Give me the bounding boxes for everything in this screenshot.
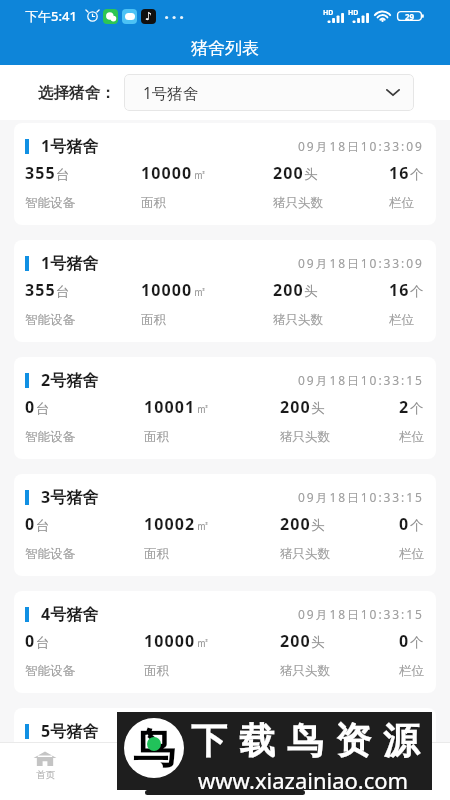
staticText: 1号猪舍	[41, 252, 99, 274]
staticText: ㎡	[196, 400, 210, 417]
staticText: 头	[311, 751, 325, 768]
staticText: www.xiazainiao.com	[198, 765, 409, 795]
staticText: HD	[348, 8, 359, 18]
staticText: 栏位	[389, 312, 414, 328]
staticText: 智能设备	[25, 429, 75, 445]
staticText: ㎡	[193, 283, 207, 300]
staticText: 选择猪舍：	[38, 83, 116, 103]
staticText: 智能设备	[25, 663, 75, 679]
staticText: 2号猪舍	[41, 369, 99, 391]
staticText: 个	[410, 517, 424, 534]
staticText: 台	[36, 751, 50, 768]
staticText: 面积	[141, 195, 166, 211]
staticText: 鸟	[133, 723, 175, 776]
staticText: 200	[280, 630, 311, 652]
staticText: 1号猪舍	[41, 135, 99, 157]
staticText: 个	[410, 283, 424, 300]
staticText: 头	[311, 634, 325, 651]
staticText: 头	[304, 166, 318, 183]
staticText: 0	[25, 630, 36, 652]
staticText: 个	[410, 634, 424, 651]
staticText: 智能设备	[25, 195, 75, 211]
staticText: 面积	[144, 663, 169, 679]
staticText: 200	[280, 513, 311, 535]
staticText: 10000	[141, 162, 193, 184]
button[interactable]: 2号猪舍	[14, 357, 436, 459]
staticText: 台	[56, 166, 70, 183]
staticText: 5号猪舍	[41, 720, 99, 742]
staticText: 面积	[144, 546, 169, 562]
staticText: 台	[56, 283, 70, 300]
staticText: ㎡	[196, 751, 210, 768]
staticText: 栏位	[399, 429, 424, 445]
button[interactable]: 4号猪舍	[14, 591, 436, 693]
staticText: 台	[36, 517, 50, 534]
staticText: 栏位	[399, 663, 424, 679]
staticText: HD	[323, 8, 334, 18]
button[interactable]: 5号猪舍	[14, 708, 436, 800]
staticText: 16	[389, 279, 410, 301]
staticText: 10001	[144, 396, 196, 418]
staticText: 200	[273, 162, 304, 184]
staticText: 09月18日10:33:09	[298, 255, 424, 271]
staticText: 4号猪舍	[41, 603, 99, 625]
staticText: ㎡	[196, 517, 210, 534]
staticText: 1号猪舍	[143, 82, 199, 103]
staticText: ♪	[145, 10, 153, 23]
staticText: 16	[389, 162, 410, 184]
staticText: 355	[25, 162, 56, 184]
staticText: 面积	[144, 780, 169, 796]
staticText: 台	[36, 400, 50, 417]
staticText: 0	[399, 630, 410, 652]
staticText: 猪只头数	[280, 780, 330, 796]
staticText: 10002	[144, 513, 196, 535]
staticText: 0	[25, 747, 36, 769]
staticText: 猪只头数	[280, 546, 330, 562]
staticText: 10000	[144, 630, 196, 652]
staticText: 0	[25, 396, 36, 418]
button[interactable]: 1号猪舍	[124, 74, 414, 111]
staticText: 猪只头数	[280, 663, 330, 679]
staticText: 09月18日10:33:15	[298, 372, 424, 388]
staticText: 头	[311, 400, 325, 417]
button[interactable]: 3号猪舍	[14, 474, 436, 576]
staticText: 台	[36, 634, 50, 651]
staticText: 栏位	[389, 195, 414, 211]
staticText: ㎡	[193, 166, 207, 183]
staticText: 个	[410, 751, 424, 768]
staticText: 09月18日10:33:15	[298, 489, 424, 505]
staticText: 09月18日10:33:15	[298, 606, 424, 622]
button[interactable]: 首页	[0, 743, 90, 800]
staticText: 下午5:41	[25, 7, 77, 25]
staticText: 智能设备	[25, 312, 75, 328]
button[interactable]: 1号猪舍	[14, 123, 436, 225]
staticText: 智能设备	[25, 546, 75, 562]
staticText: 0	[25, 513, 36, 535]
staticText: 猪只头数	[273, 312, 323, 328]
staticText: 200	[280, 396, 311, 418]
staticText: 头	[311, 517, 325, 534]
staticText: 个	[410, 400, 424, 417]
staticText: 200	[280, 747, 311, 769]
staticText: 面积	[141, 312, 166, 328]
staticText: 10000	[144, 747, 196, 769]
staticText: 栏位	[399, 546, 424, 562]
staticText: 头	[304, 283, 318, 300]
staticText: 栏位	[399, 780, 424, 796]
staticText: 200	[273, 279, 304, 301]
staticText: 09月18日10:33:15	[298, 723, 424, 739]
staticText: 猪舍列表	[191, 38, 259, 59]
staticText: 猪只头数	[280, 429, 330, 445]
staticText: 个	[410, 166, 424, 183]
staticText: 面积	[144, 429, 169, 445]
staticText: 10000	[141, 279, 193, 301]
button[interactable]: 1号猪舍	[14, 240, 436, 342]
staticText: 0	[399, 513, 410, 535]
staticText: ㎡	[196, 634, 210, 651]
staticText: 09月18日10:33:09	[298, 138, 424, 154]
staticText: 下载鸟资源	[185, 718, 425, 763]
staticText: 3号猪舍	[41, 486, 99, 508]
staticText: 355	[25, 279, 56, 301]
staticText: 猪只头数	[273, 195, 323, 211]
